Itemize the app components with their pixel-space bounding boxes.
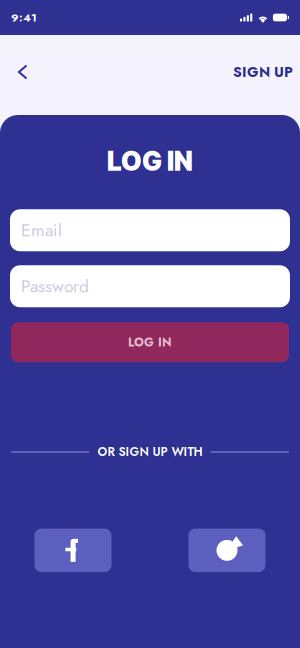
- staticText: 9:41: [11, 9, 37, 26]
- staticText: LOG IN: [128, 334, 172, 351]
- staticText: LOG IN: [107, 145, 193, 177]
- staticText: Email: [21, 218, 62, 243]
- button[interactable]: LOG IN: [11, 322, 289, 362]
- staticText: OR SIGN UP WITH: [97, 443, 202, 461]
- staticText: SIGN UP: [233, 62, 293, 82]
- button[interactable]: Back: [0, 55, 38, 94]
- staticText: Password: [21, 274, 89, 299]
- button[interactable]: Continue with Google: [188, 529, 265, 572]
- button[interactable]: SIGN UP: [219, 52, 300, 98]
- button[interactable]: Continue with Facebook: [34, 529, 111, 572]
